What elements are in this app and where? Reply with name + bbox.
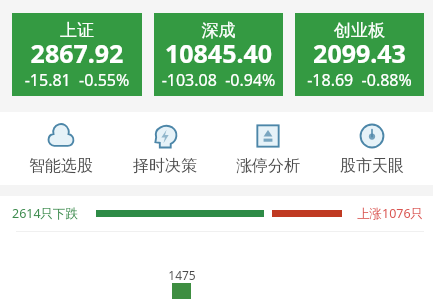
staticText: 创业板 xyxy=(295,20,424,41)
staticText: 上证 xyxy=(12,20,142,41)
staticText: -18.69 -0.88% xyxy=(295,69,424,91)
staticText: 2867.92 xyxy=(12,36,142,70)
button[interactable]: 深成 xyxy=(154,13,283,96)
staticText: 10845.40 xyxy=(154,36,283,70)
button[interactable]: 择时决策 xyxy=(123,112,207,176)
staticText: 深成 xyxy=(154,20,283,41)
staticText: 上涨1076只 xyxy=(357,205,424,222)
staticText: 择时决策 xyxy=(133,156,197,176)
other: 智能选股 xyxy=(48,123,74,149)
staticText: -103.08 -0.94% xyxy=(154,69,283,91)
other: 择时决策 xyxy=(152,123,178,149)
other: 股市天眼 xyxy=(359,123,385,149)
staticText: -15.81 -0.55% xyxy=(12,69,142,91)
other: 涨停分析 xyxy=(255,123,281,149)
button[interactable]: 创业板 xyxy=(295,13,424,96)
button[interactable]: 上证 xyxy=(12,13,142,96)
button[interactable]: 智能选股 xyxy=(19,112,103,176)
staticText: 2614只下跌 xyxy=(12,205,79,222)
staticText: 智能选股 xyxy=(29,156,93,176)
staticText: 1475 xyxy=(163,267,201,283)
button[interactable]: 涨停分析 xyxy=(226,112,310,176)
staticText: 涨停分析 xyxy=(236,156,300,176)
button[interactable]: 股市天眼 xyxy=(330,112,414,176)
staticText: 股市天眼 xyxy=(340,156,404,176)
staticText: 2099.43 xyxy=(295,36,424,70)
